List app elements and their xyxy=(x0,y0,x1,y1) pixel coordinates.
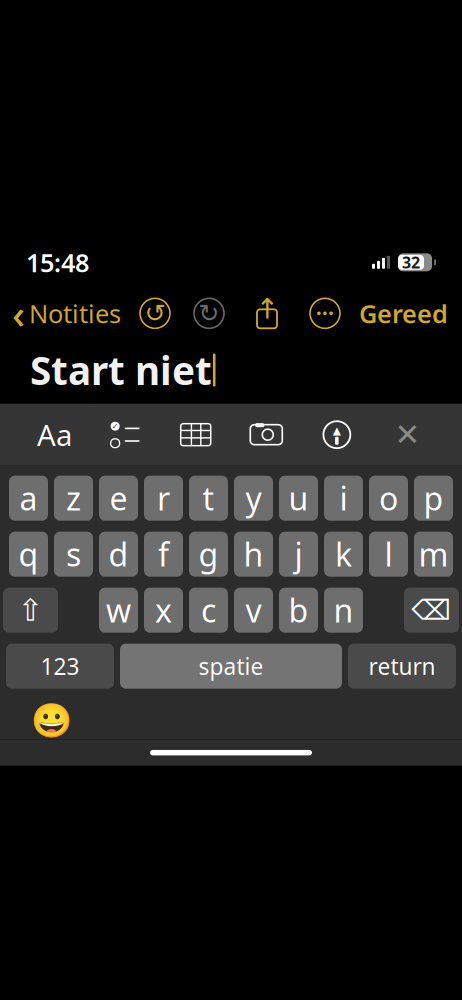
staticText: 15:48 xyxy=(26,245,89,279)
staticText: Gereed xyxy=(359,296,448,330)
staticText: Start niet xyxy=(30,344,212,396)
staticText: ↺ xyxy=(144,299,165,328)
staticText: ▲ xyxy=(333,425,341,437)
staticText: r xyxy=(157,477,170,519)
staticText: a xyxy=(19,477,37,519)
button[interactable]: a xyxy=(9,476,48,521)
button[interactable]: p xyxy=(414,476,453,521)
staticText: ⌫ xyxy=(411,594,451,626)
button[interactable]: h xyxy=(234,532,273,577)
staticText: return xyxy=(368,651,435,681)
staticText: ↻ xyxy=(198,299,219,328)
button[interactable]: 123 xyxy=(6,644,114,689)
staticText: q xyxy=(18,533,38,575)
button[interactable]: Markup xyxy=(315,418,359,452)
button[interactable]: o xyxy=(369,476,408,521)
staticText: g xyxy=(198,533,218,575)
button[interactable]: e xyxy=(99,476,138,521)
button[interactable]: q xyxy=(9,532,48,577)
staticText: o xyxy=(379,477,398,519)
button[interactable]: z xyxy=(54,476,93,521)
staticText: p xyxy=(423,477,443,519)
staticText: Aa xyxy=(37,415,72,454)
staticText: 😀 xyxy=(31,702,73,740)
button[interactable]: Shift xyxy=(3,588,58,633)
button[interactable]: Table xyxy=(174,418,218,452)
staticText: 32 xyxy=(402,252,420,273)
button[interactable]: d xyxy=(99,532,138,577)
button[interactable]: ‹ xyxy=(0,281,121,346)
staticText: f xyxy=(158,533,169,575)
button[interactable]: w xyxy=(99,588,138,633)
button[interactable]: t xyxy=(189,476,228,521)
button[interactable]: Format xyxy=(33,418,77,452)
staticText: 123 xyxy=(40,651,79,681)
staticText: s xyxy=(66,533,81,575)
button[interactable]: Gereed xyxy=(359,290,462,336)
button[interactable]: Redo xyxy=(192,296,226,330)
button[interactable]: m xyxy=(414,532,453,577)
button[interactable]: y xyxy=(234,476,273,521)
button[interactable]: Hide keyboard xyxy=(385,418,429,452)
staticText: n xyxy=(333,589,353,631)
staticText: k xyxy=(335,533,352,575)
button[interactable]: v xyxy=(234,588,273,633)
button[interactable]: g xyxy=(189,532,228,577)
staticText: b xyxy=(288,589,308,631)
button[interactable]: Delete xyxy=(404,588,459,633)
staticText: Notities xyxy=(29,296,121,330)
staticText: ✓ xyxy=(112,422,119,431)
button[interactable]: Share xyxy=(252,297,282,329)
button[interactable]: spatie xyxy=(120,644,342,689)
staticText: z xyxy=(66,477,81,519)
staticText: x xyxy=(155,589,172,631)
staticText: m xyxy=(418,533,448,575)
button[interactable]: return xyxy=(348,644,456,689)
button[interactable]: i xyxy=(324,476,363,521)
staticText: y xyxy=(245,477,261,519)
button[interactable]: Camera xyxy=(244,418,288,452)
button[interactable]: k xyxy=(324,532,363,577)
staticText: i xyxy=(339,477,347,519)
staticText: d xyxy=(108,533,128,575)
button[interactable]: r xyxy=(144,476,183,521)
staticText: u xyxy=(288,477,308,519)
button[interactable]: l xyxy=(369,532,408,577)
staticText: v xyxy=(245,589,261,631)
button[interactable]: c xyxy=(189,588,228,633)
button[interactable]: u xyxy=(279,476,318,521)
staticText: spatie xyxy=(198,651,263,681)
staticText: t xyxy=(202,477,214,519)
staticText: j xyxy=(294,533,302,575)
staticText: l xyxy=(384,533,392,575)
button[interactable]: x xyxy=(144,588,183,633)
staticText: w xyxy=(106,589,131,631)
staticText: e xyxy=(109,477,127,519)
staticText: c xyxy=(201,589,216,631)
button[interactable]: f xyxy=(144,532,183,577)
staticText: ↑ xyxy=(255,293,278,325)
button[interactable]: s xyxy=(54,532,93,577)
button[interactable]: j xyxy=(279,532,318,577)
staticText: ⇧ xyxy=(17,593,43,628)
staticText: ‹ xyxy=(12,287,25,340)
button[interactable]: n xyxy=(324,588,363,633)
staticText: h xyxy=(243,533,263,575)
button[interactable]: Checklist xyxy=(103,418,147,452)
button[interactable]: More xyxy=(308,296,342,330)
button[interactable]: Undo xyxy=(138,296,172,330)
button[interactable]: b xyxy=(279,588,318,633)
button[interactable]: Emoji xyxy=(33,702,71,740)
staticText: ✕ xyxy=(394,417,420,452)
